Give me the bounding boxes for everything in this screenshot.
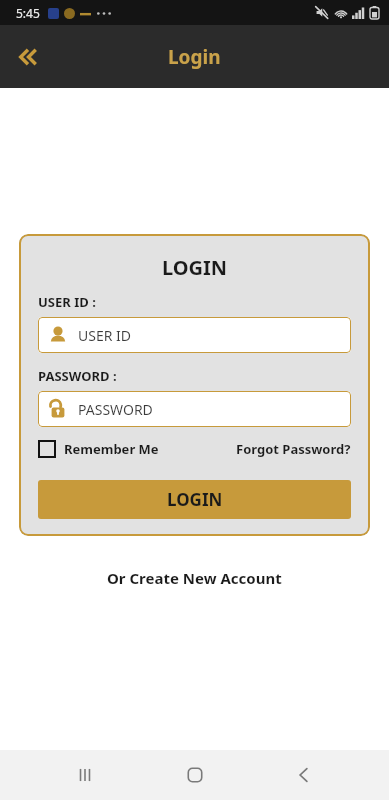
button[interactable]: LOGIN	[38, 480, 351, 519]
staticText: 5:45	[16, 5, 40, 21]
staticText: LOGIN	[38, 254, 351, 281]
button[interactable]: Recent apps	[61, 751, 109, 799]
staticText: Remember Me	[64, 440, 159, 458]
staticText: Forgot Password?	[236, 440, 351, 458]
button[interactable]: Home	[171, 751, 219, 799]
button[interactable]: Forgot Password?	[236, 440, 351, 458]
button[interactable]: USER ID	[38, 317, 351, 353]
staticText: Or Create New Account	[107, 568, 282, 588]
button[interactable]: Remember Me	[38, 440, 159, 458]
button[interactable]: Back	[280, 751, 328, 799]
staticText: LOGIN	[167, 488, 223, 511]
staticText: USER ID	[78, 326, 132, 345]
staticText: USER ID :	[38, 293, 96, 311]
button[interactable]: Or Create New Account	[0, 568, 389, 588]
staticText: PASSWORD	[78, 400, 153, 419]
button[interactable]: PASSWORD	[38, 391, 351, 427]
staticText: Login	[168, 44, 221, 70]
button[interactable]: Back	[6, 34, 52, 80]
staticText: PASSWORD :	[38, 367, 117, 385]
